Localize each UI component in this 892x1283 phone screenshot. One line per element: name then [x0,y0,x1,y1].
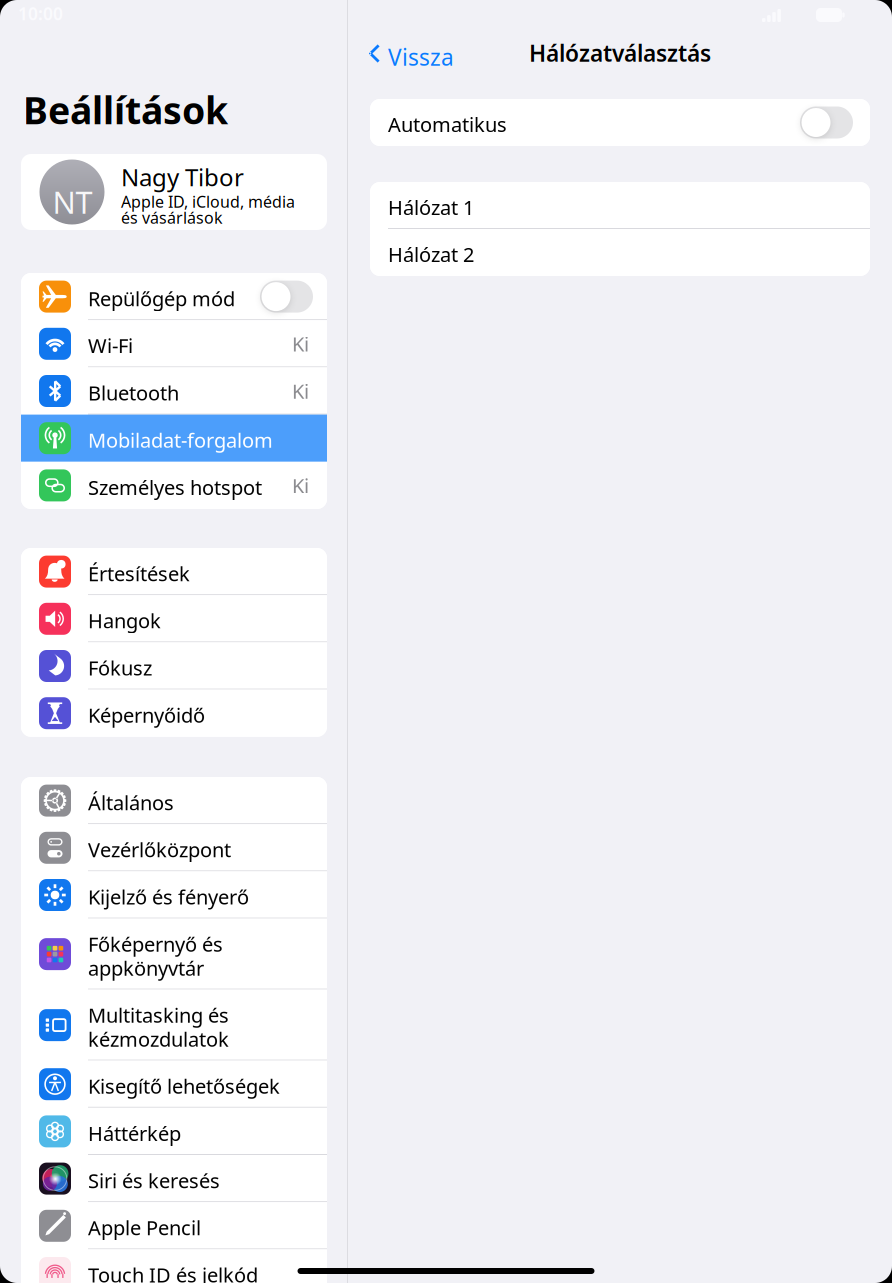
button[interactable]: Vezérlőközpont [21,824,327,871]
button[interactable]: Képernyőidő [21,690,327,737]
button[interactable]: Kisegítő lehetőségek [21,1061,327,1108]
staticText: Fókusz [88,654,152,681]
staticText: Főképernyő és [88,931,223,957]
staticText: Beállítások [23,85,228,135]
staticText: Wi-Fi [88,332,133,359]
staticText: Háttérkép [88,1120,181,1146]
button[interactable]: Értesítések [21,548,327,595]
staticText: Vezérlőközpont [88,836,231,863]
button[interactable]: Személyes hotspot [21,462,327,509]
staticText: Apple Pencil [88,1214,201,1241]
staticText: Képernyőidő [88,702,205,728]
staticText: Ki [292,330,309,357]
button[interactable]: Vissza [369,36,465,70]
button[interactable]: Wi-Fi [21,320,327,367]
staticText: Nagy Tibor [121,161,244,193]
button[interactable]: Multitasking és [21,990,327,1061]
staticText: Személyes hotspot [88,474,262,500]
button[interactable]: Touch ID és jelkód [21,1249,327,1283]
button[interactable]: Kijelző és fényerő [21,871,327,919]
staticText: Ki [292,378,309,404]
button[interactable]: Általános [21,777,327,824]
staticText: Touch ID és jelkód [88,1261,258,1283]
button[interactable]: Hálózat 1 [370,182,870,229]
staticText: Bluetooth [88,379,179,406]
staticText: Hálózatválasztás [529,38,711,68]
button[interactable]: Bluetooth [21,367,327,415]
staticText: kézmozdulatok [88,1026,229,1052]
staticText: Kijelző és fényerő [88,883,249,910]
staticText: Hangok [88,607,161,634]
staticText: Hálózat 2 [388,241,474,268]
staticText: Vissza [388,42,454,72]
staticText: Apple ID, iCloud, média [121,191,295,212]
staticText: 10:00 [18,2,63,25]
staticText: Értesítések [88,560,190,587]
button[interactable]: Repülőgép mód [21,273,327,320]
staticText: Hálózat 1 [388,194,474,221]
staticText: Multitasking és [88,1002,229,1028]
button[interactable]: Fókusz [21,642,327,690]
button[interactable]: Főképernyő és [21,919,327,990]
staticText: NT [52,181,92,222]
button[interactable]: Automatikus [370,99,870,146]
staticText: appkönyvtár [88,955,204,981]
button[interactable]: NT [21,154,327,230]
button[interactable]: Apple Pencil [21,1202,327,1249]
button[interactable]: Siri és keresés [21,1155,327,1202]
staticText: Kisegítő lehetőségek [88,1073,280,1099]
staticText: Repülőgép mód [88,285,235,312]
staticText: Általános [88,789,174,816]
button[interactable]: Hangok [21,595,327,642]
button[interactable]: Háttérkép [21,1108,327,1155]
button[interactable]: Hálózat 2 [370,229,870,276]
staticText: Siri és keresés [88,1167,220,1194]
staticText: Ki [292,472,309,499]
staticText: és vásárlások [121,207,223,228]
button[interactable]: Mobiladat-forgalom [21,415,327,462]
staticText: Automatikus [388,111,507,138]
staticText: Mobiladat-forgalom [88,427,273,453]
